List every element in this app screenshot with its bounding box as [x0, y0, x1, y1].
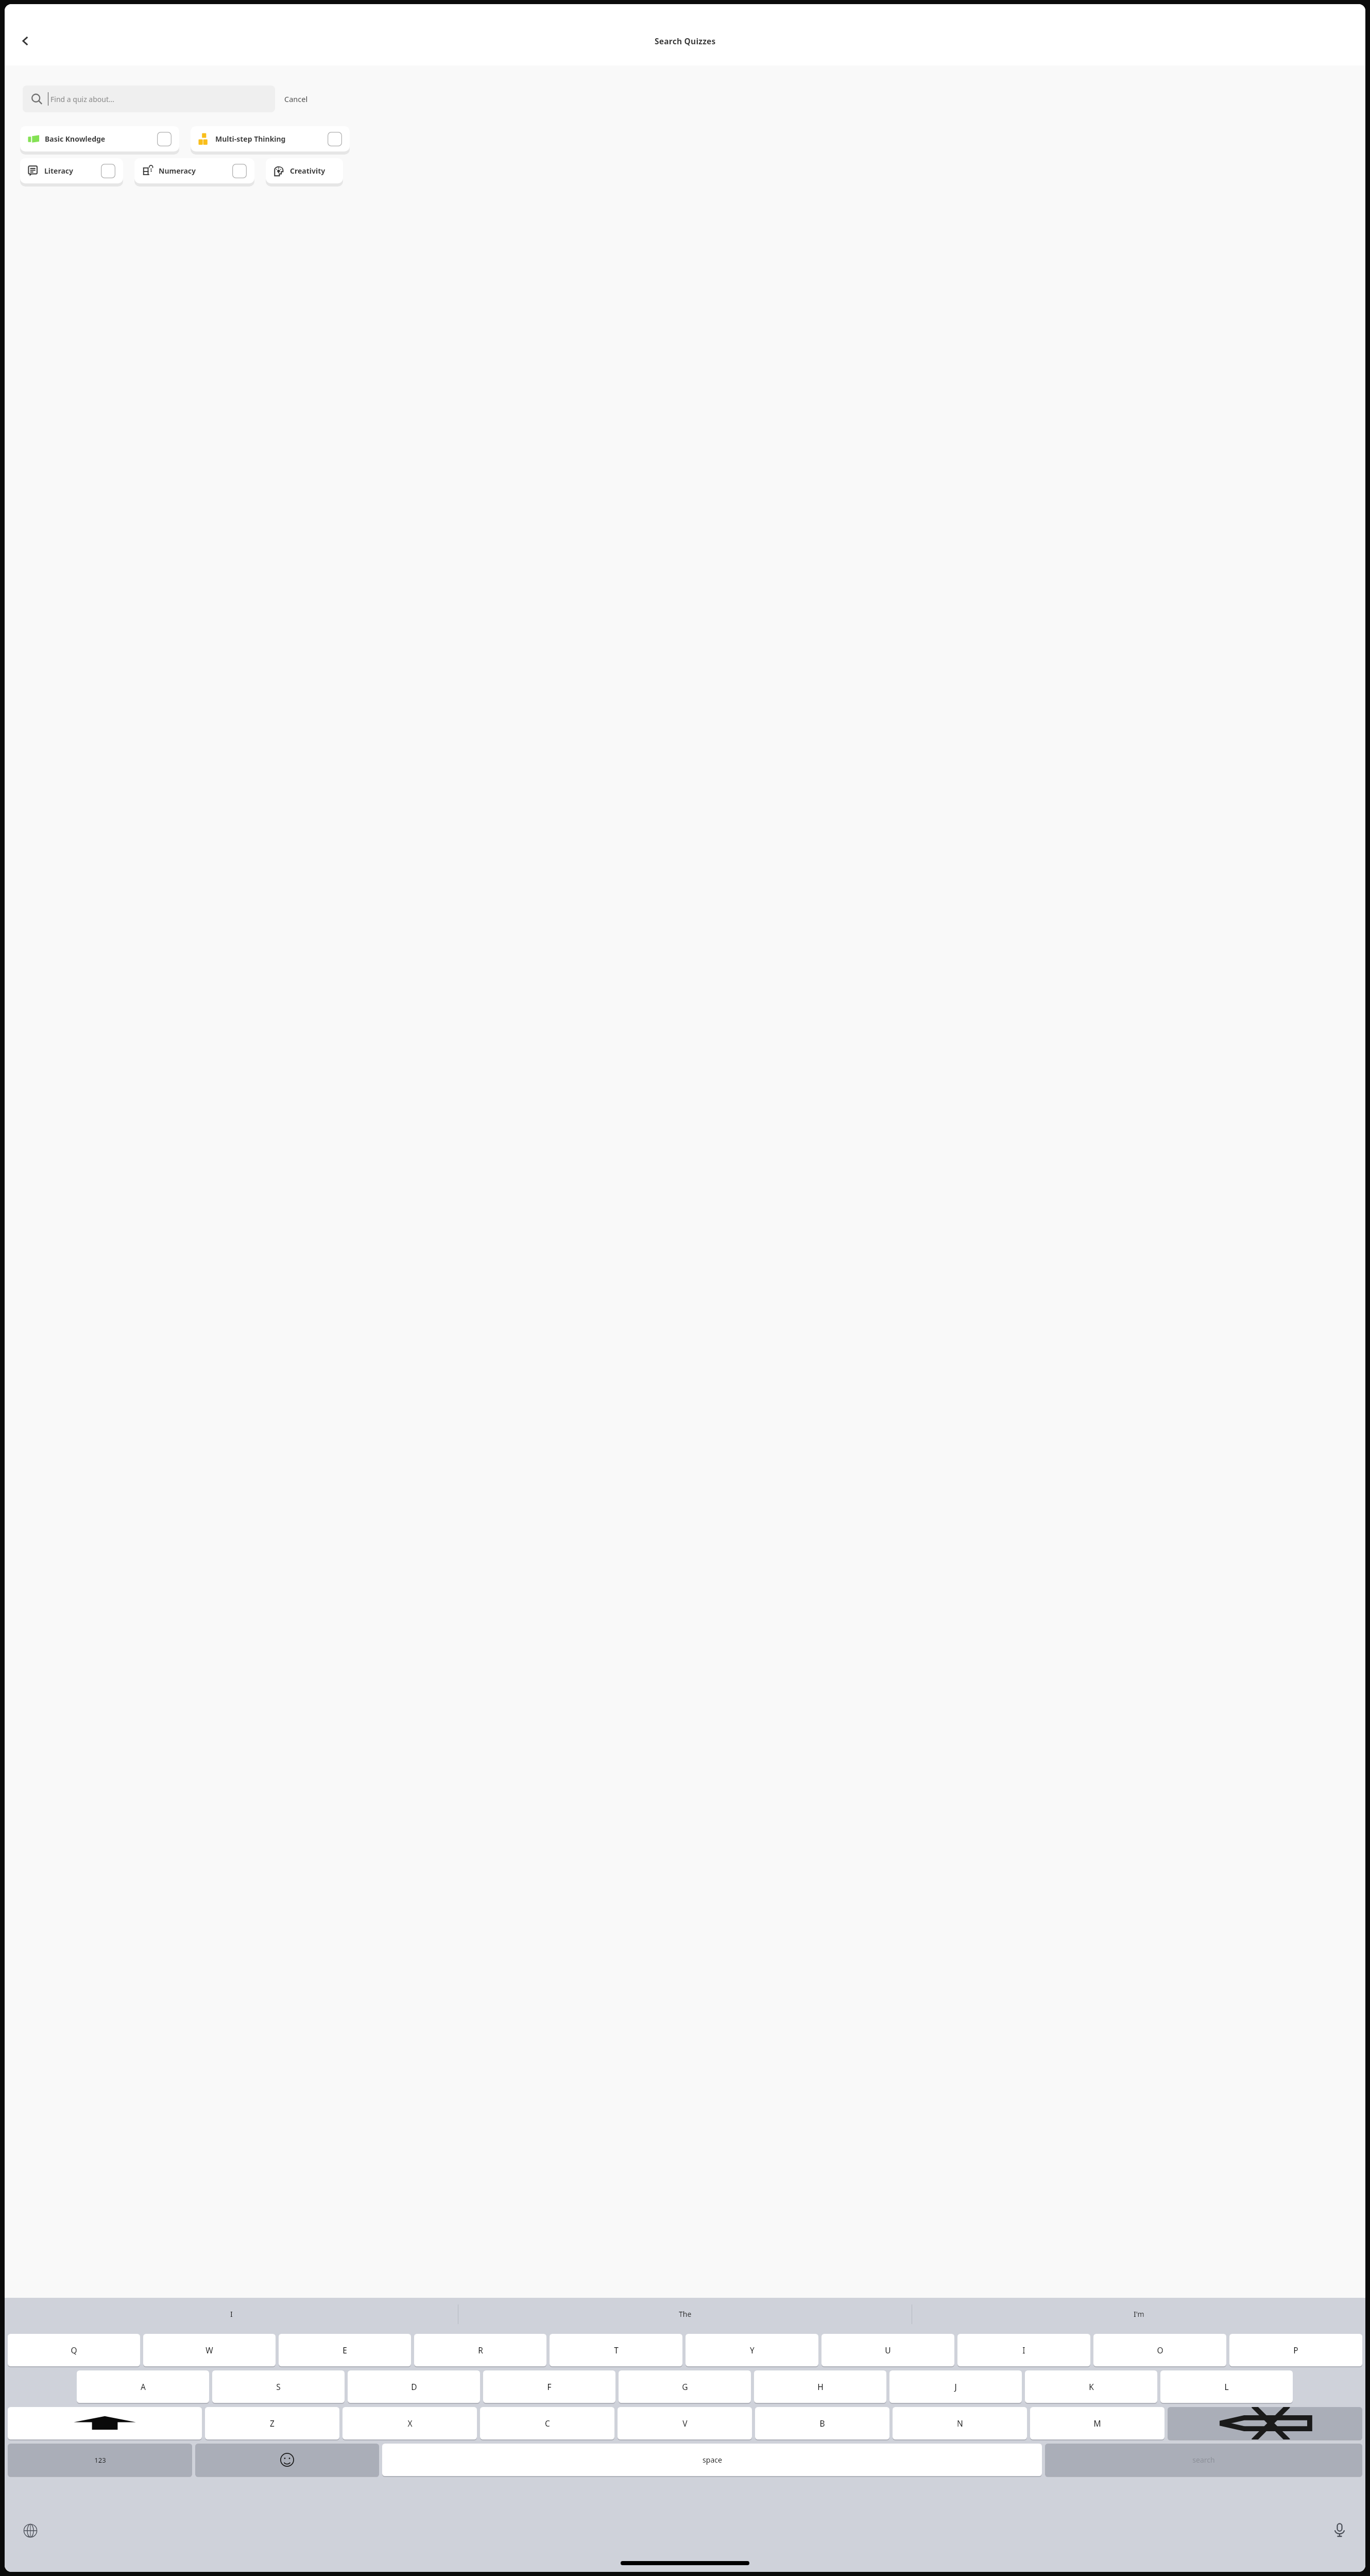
- staticText: Cancel: [284, 94, 308, 104]
- staticText: N: [957, 2418, 963, 2429]
- staticText: R: [478, 2345, 483, 2355]
- staticText: L: [1224, 2381, 1229, 2392]
- button[interactable]: 123: [8, 2444, 192, 2476]
- staticText: Numeracy: [159, 166, 196, 176]
- button[interactable]: Backspace: [1168, 2407, 1362, 2439]
- button[interactable]: C: [480, 2407, 614, 2439]
- button[interactable]: Find a quiz about…: [23, 86, 275, 112]
- staticText: I: [230, 2309, 233, 2319]
- staticText: G: [682, 2381, 688, 2392]
- staticText: I: [1022, 2345, 1025, 2355]
- button[interactable]: A: [77, 2370, 209, 2403]
- staticText: S: [276, 2381, 281, 2392]
- button[interactable]: F: [483, 2370, 615, 2403]
- button[interactable]: Dictation: [1332, 2522, 1347, 2538]
- staticText: Literacy: [44, 166, 74, 176]
- button[interactable]: T: [550, 2334, 682, 2366]
- button[interactable]: Emoji: [195, 2444, 379, 2476]
- button[interactable]: X: [342, 2407, 477, 2439]
- staticText: H: [817, 2381, 824, 2392]
- button[interactable]: H: [754, 2370, 886, 2403]
- button[interactable]: Creativity: [266, 158, 343, 183]
- staticText: K: [1089, 2381, 1094, 2392]
- staticText: C: [545, 2418, 550, 2429]
- button[interactable]: D: [348, 2370, 480, 2403]
- button[interactable]: Multi-step Thinking: [191, 126, 350, 151]
- button[interactable]: I'm: [912, 2298, 1365, 2330]
- staticText: T: [614, 2345, 619, 2355]
- staticText: space: [703, 2455, 722, 2465]
- button[interactable]: Z: [205, 2407, 339, 2439]
- button[interactable]: Shift: [8, 2407, 202, 2439]
- button[interactable]: V: [618, 2407, 752, 2439]
- staticText: D: [411, 2381, 417, 2392]
- button[interactable]: Back: [17, 32, 34, 49]
- button[interactable]: O: [1093, 2334, 1226, 2366]
- staticText: Z: [270, 2418, 275, 2429]
- button[interactable]: Y: [686, 2334, 818, 2366]
- staticText: V: [682, 2418, 688, 2429]
- staticText: W: [205, 2345, 213, 2355]
- staticText: The: [679, 2309, 692, 2319]
- button[interactable]: Cancel: [284, 94, 308, 104]
- staticText: search: [1192, 2455, 1215, 2465]
- button[interactable]: Change keyboard: [23, 2523, 38, 2538]
- staticText: A: [141, 2381, 146, 2392]
- staticText: Y: [750, 2345, 755, 2355]
- staticText: F: [547, 2381, 552, 2392]
- staticText: J: [954, 2381, 957, 2392]
- staticText: O: [1157, 2345, 1163, 2355]
- staticText: Creativity: [290, 166, 326, 176]
- button[interactable]: I: [957, 2334, 1090, 2366]
- button[interactable]: Literacy: [20, 158, 123, 183]
- staticText: E: [342, 2345, 347, 2355]
- staticText: P: [1293, 2345, 1298, 2355]
- staticText: Find a quiz about…: [50, 94, 115, 104]
- staticText: X: [407, 2418, 413, 2429]
- button[interactable]: U: [821, 2334, 954, 2366]
- button[interactable]: S: [212, 2370, 345, 2403]
- button[interactable]: space: [382, 2444, 1042, 2476]
- button[interactable]: E: [279, 2334, 411, 2366]
- staticText: Search Quizzes: [655, 36, 716, 46]
- staticText: Q: [71, 2345, 77, 2355]
- button[interactable]: J: [889, 2370, 1022, 2403]
- staticText: Basic Knowledge: [45, 134, 106, 144]
- button[interactable]: G: [619, 2370, 751, 2403]
- button[interactable]: Q: [8, 2334, 140, 2366]
- button[interactable]: The: [458, 2298, 912, 2330]
- staticText: 123: [94, 2455, 106, 2465]
- button[interactable]: P: [1229, 2334, 1362, 2366]
- button[interactable]: R: [414, 2334, 546, 2366]
- button[interactable]: W: [143, 2334, 276, 2366]
- button[interactable]: L: [1160, 2370, 1293, 2403]
- button[interactable]: Basic Knowledge: [20, 126, 179, 151]
- button[interactable]: M: [1030, 2407, 1164, 2439]
- button[interactable]: Numeracy: [134, 158, 254, 183]
- staticText: B: [819, 2418, 825, 2429]
- button[interactable]: N: [893, 2407, 1027, 2439]
- staticText: Multi-step Thinking: [215, 134, 286, 144]
- button[interactable]: B: [755, 2407, 889, 2439]
- staticText: U: [885, 2345, 891, 2355]
- button[interactable]: K: [1025, 2370, 1157, 2403]
- staticText: I'm: [1134, 2309, 1144, 2319]
- staticText: M: [1093, 2418, 1101, 2429]
